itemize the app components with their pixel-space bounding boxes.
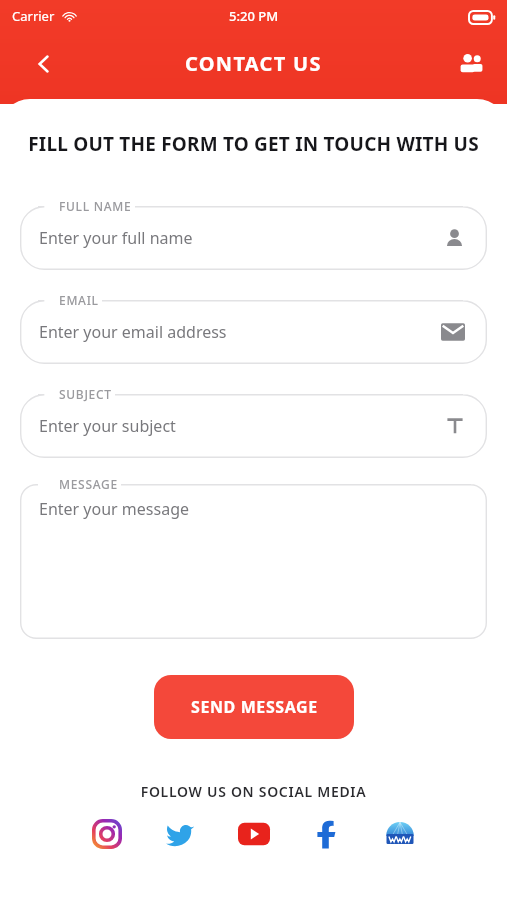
staticText: EMAIL	[59, 292, 99, 308]
button[interactable]: SEND MESSAGE	[154, 675, 354, 739]
staticText: FULL NAME	[59, 198, 132, 214]
staticText: CONTACT US	[185, 50, 322, 77]
staticText: Enter your full name	[39, 227, 193, 249]
button[interactable]: Contacts	[449, 42, 493, 86]
staticText: Enter your email address	[39, 321, 227, 343]
button[interactable]: Enter your subject	[20, 394, 487, 458]
staticText: Enter your subject	[39, 415, 176, 437]
button[interactable]: Enter your full name	[20, 206, 487, 270]
button[interactable]: Enter your email address	[20, 300, 487, 364]
button[interactable]: Back	[22, 42, 66, 86]
staticText: SEND MESSAGE	[191, 696, 318, 718]
staticText: MESSAGE	[59, 476, 118, 492]
button[interactable]: Twitter	[161, 815, 199, 853]
button[interactable]: YouTube	[235, 815, 273, 853]
staticText: 5:20 PM	[229, 7, 279, 25]
button[interactable]: Enter your message	[20, 484, 487, 639]
staticText: FILL OUT THE FORM TO GET IN TOUCH WITH U…	[24, 131, 483, 157]
button[interactable]: Instagram	[88, 815, 126, 853]
button[interactable]: Facebook	[308, 815, 346, 853]
staticText: FOLLOW US ON SOCIAL MEDIA	[0, 782, 507, 801]
staticText: Enter your message	[39, 498, 190, 520]
button[interactable]: Website	[381, 815, 419, 853]
staticText: Carrier	[12, 7, 55, 25]
staticText: SUBJECT	[59, 386, 112, 402]
